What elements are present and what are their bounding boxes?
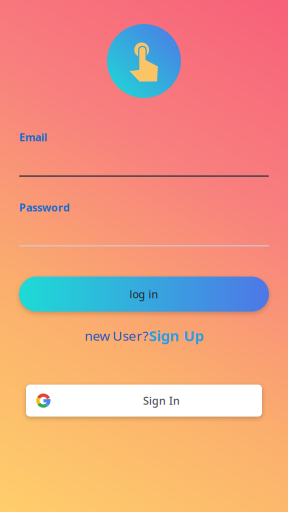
staticText: log in — [129, 287, 158, 301]
staticText: Password — [19, 200, 70, 214]
staticText: Sign In — [143, 393, 180, 408]
staticText: new User? — [84, 327, 148, 344]
button[interactable]: Sign In — [26, 385, 262, 417]
staticText: Email — [19, 130, 47, 144]
button[interactable]: new User? — [84, 329, 203, 343]
button[interactable]: log in — [19, 277, 269, 312]
staticText: Sign Up — [148, 326, 203, 345]
